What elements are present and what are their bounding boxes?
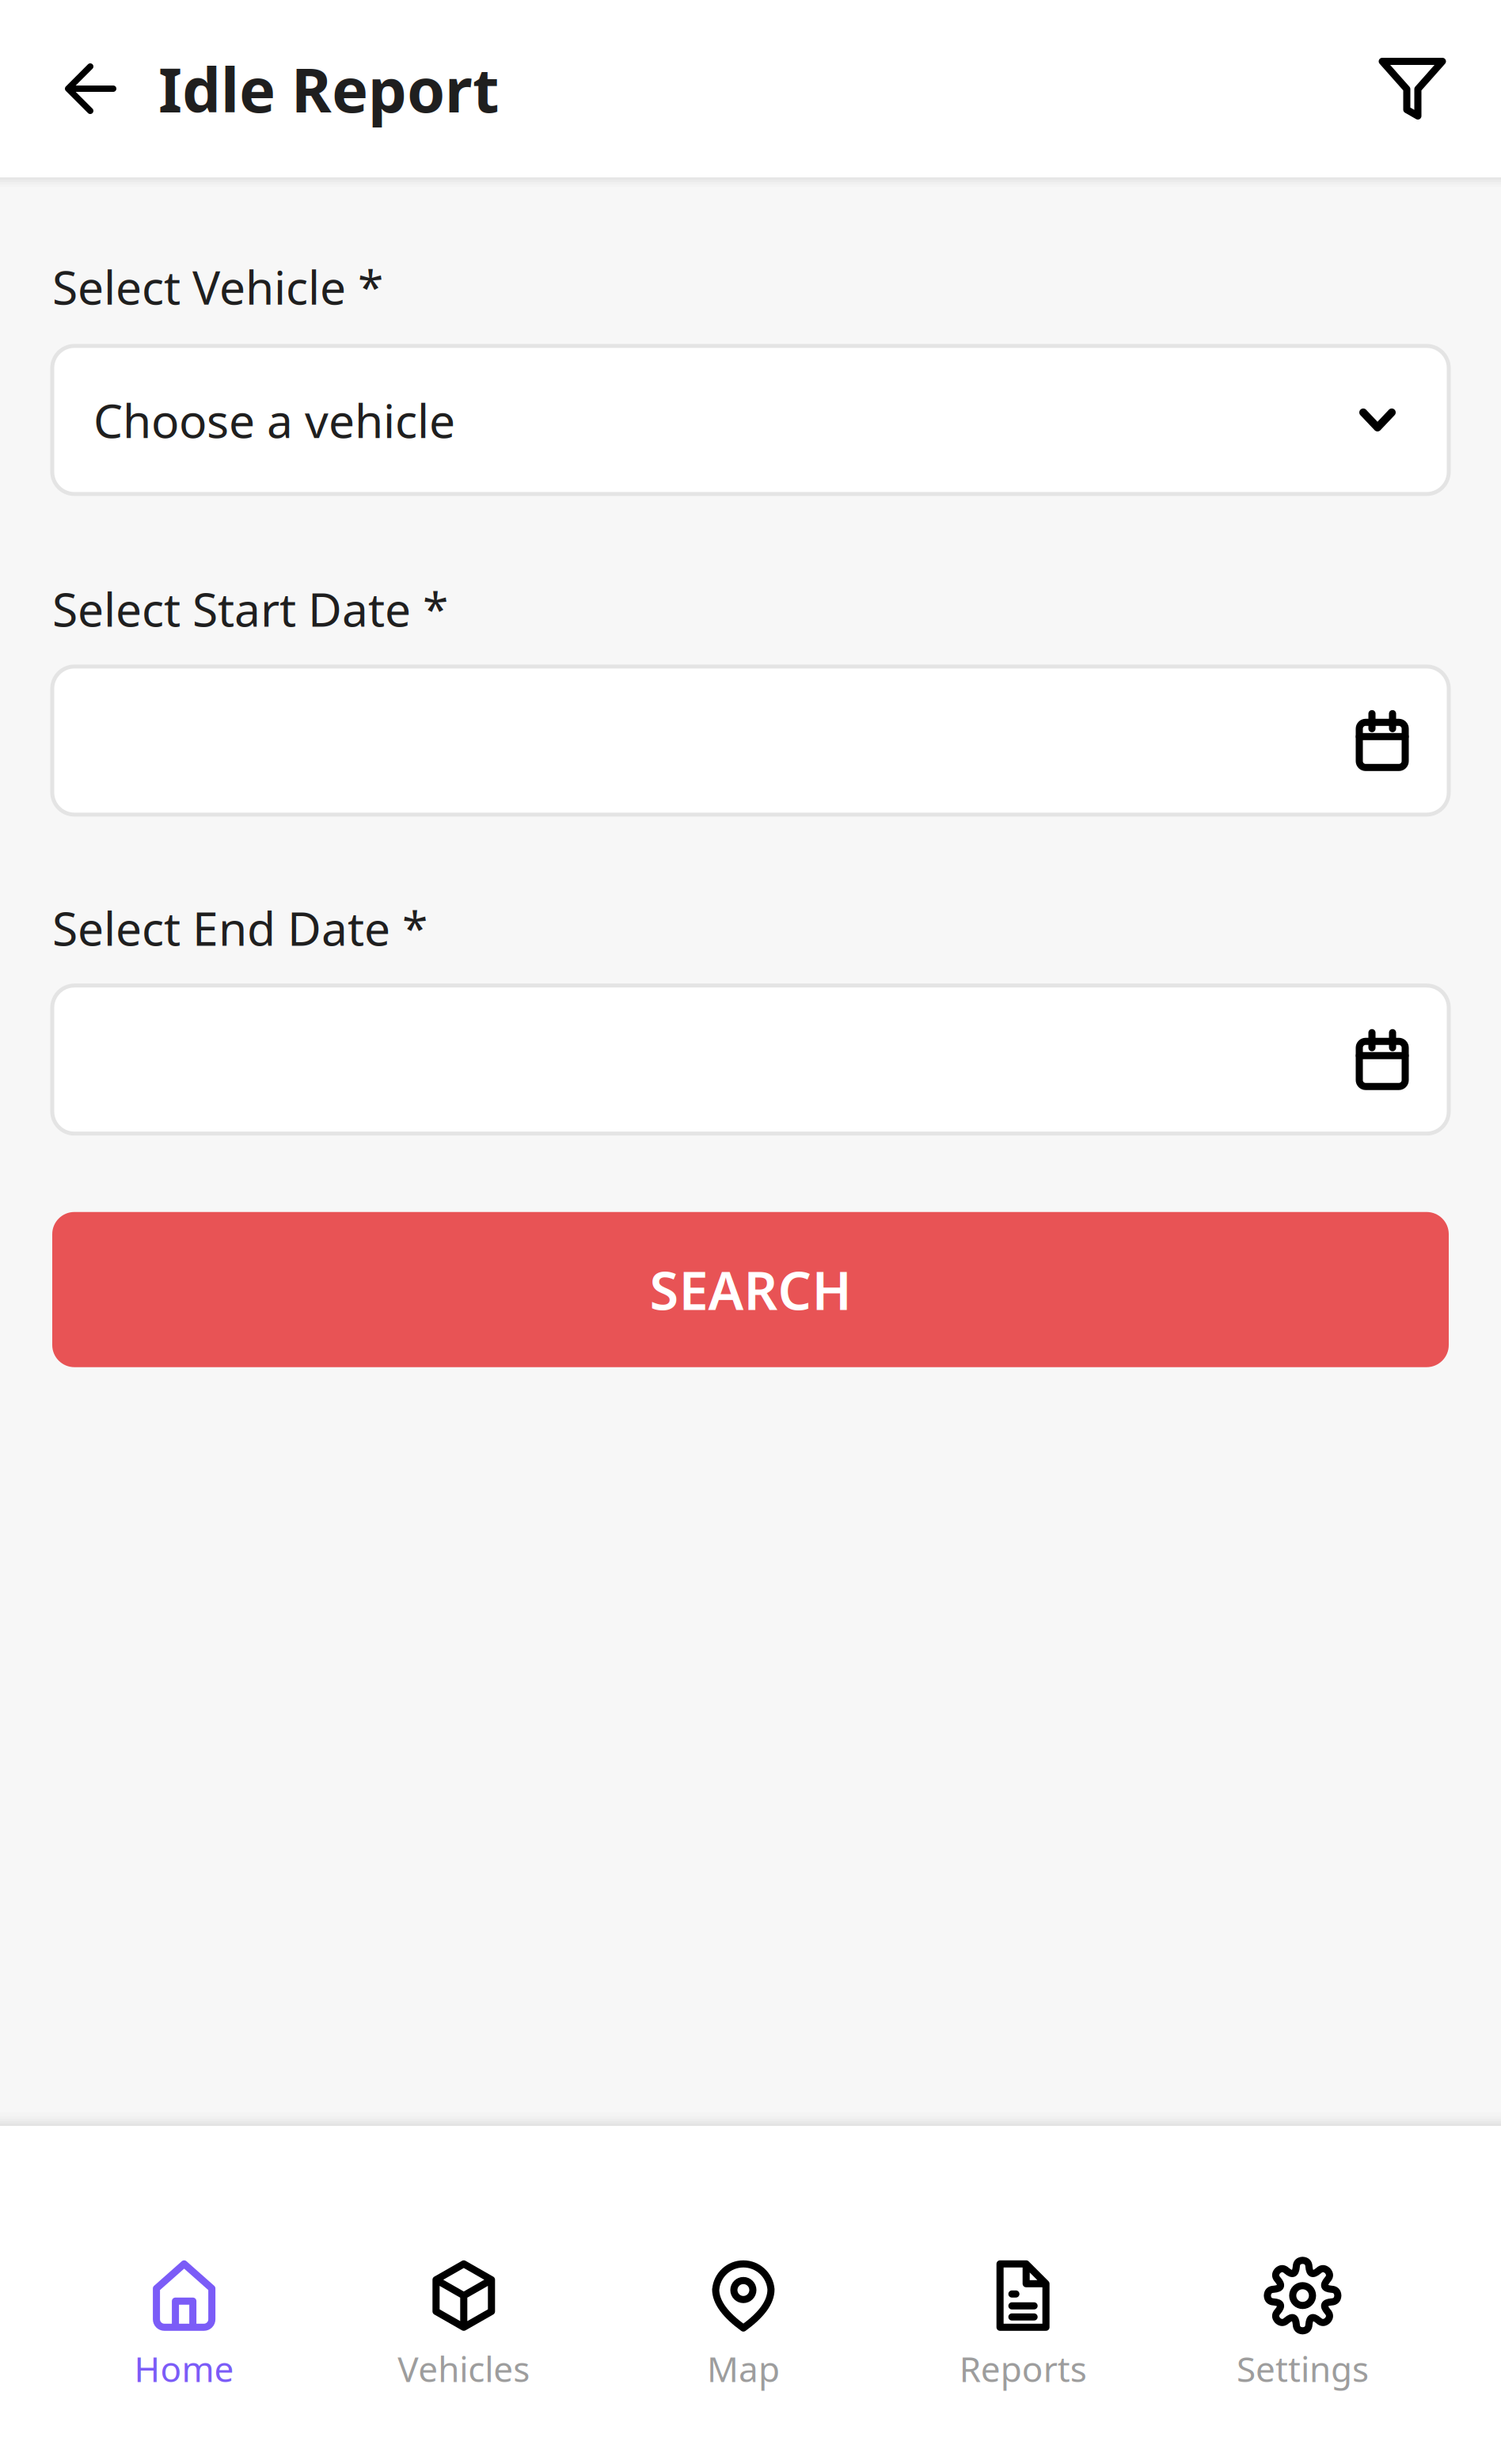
button[interactable]: Reports — [883, 2123, 1163, 2464]
staticText: Idle Report — [158, 48, 500, 129]
button[interactable]: Settings — [1163, 2123, 1442, 2464]
staticText: Choose a vehicle — [93, 389, 455, 451]
staticText: Select Start Date * — [52, 578, 448, 640]
staticText: Map — [707, 2345, 780, 2392]
button[interactable]: Choose a vehicle — [52, 346, 1449, 494]
button[interactable]: SEARCH — [52, 1212, 1449, 1367]
button[interactable]: Map — [604, 2123, 883, 2464]
button[interactable]: Back — [0, 32, 158, 146]
button[interactable] — [52, 667, 1449, 815]
staticText: Reports — [959, 2345, 1087, 2392]
button[interactable]: Home — [44, 2123, 324, 2464]
staticText: SEARCH — [650, 1255, 851, 1325]
staticText: Vehicles — [398, 2345, 530, 2392]
staticText: Select Vehicle * — [52, 256, 383, 317]
button[interactable]: Filter — [1347, 26, 1501, 152]
staticText: Settings — [1237, 2345, 1369, 2392]
staticText: Home — [134, 2345, 234, 2392]
button[interactable] — [52, 986, 1449, 1134]
button[interactable]: Vehicles — [324, 2123, 604, 2464]
staticText: Select End Date * — [52, 897, 427, 959]
